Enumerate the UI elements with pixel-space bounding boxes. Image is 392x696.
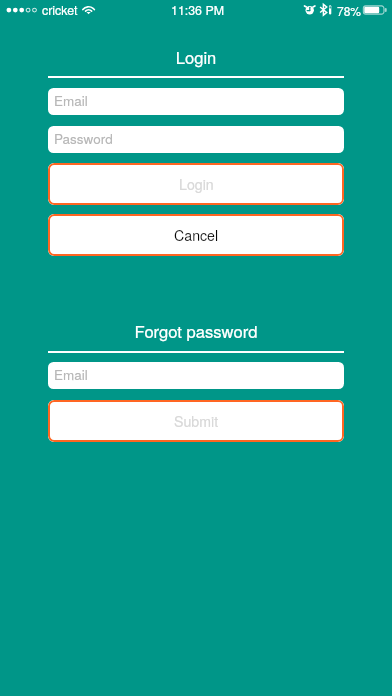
staticText: Email bbox=[54, 91, 88, 110]
staticText: Cancel bbox=[174, 225, 219, 245]
button[interactable]: Login bbox=[48, 163, 344, 205]
staticText: cricket bbox=[42, 1, 78, 19]
button[interactable]: Password bbox=[48, 126, 344, 153]
button[interactable]: Email bbox=[48, 88, 344, 115]
staticText: Submit bbox=[174, 411, 219, 431]
staticText: Login bbox=[179, 174, 214, 194]
button[interactable]: Submit bbox=[48, 400, 344, 442]
button[interactable]: Cancel bbox=[48, 214, 344, 256]
staticText: Forgot password bbox=[0, 319, 392, 343]
button[interactable]: Email bbox=[48, 362, 344, 389]
other: Status bar bbox=[0, 0, 392, 20]
staticText: Login bbox=[0, 45, 392, 69]
staticText: 78% bbox=[337, 2, 362, 19]
staticText: 11:36 PM bbox=[171, 1, 225, 19]
staticText: Password bbox=[54, 129, 113, 148]
staticText: Email bbox=[54, 365, 88, 384]
